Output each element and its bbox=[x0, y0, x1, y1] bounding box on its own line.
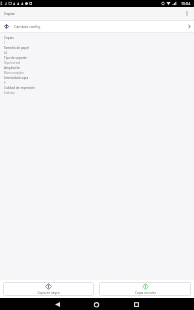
button[interactable]: Intensidad copia bbox=[0, 75, 194, 85]
staticText: 0 bbox=[4, 81, 6, 85]
staticText: 1 bbox=[4, 41, 6, 45]
button[interactable]: Home bbox=[90, 298, 103, 310]
button[interactable]: More options bbox=[180, 7, 194, 21]
staticText: Copia en negro bbox=[37, 291, 60, 295]
staticText: Estándar bbox=[4, 91, 15, 95]
button[interactable]: Calidad de impresión bbox=[0, 85, 194, 95]
staticText: Marco completo bbox=[4, 71, 24, 75]
staticText: Copias bbox=[4, 36, 14, 40]
staticText: Copiar bbox=[4, 11, 15, 16]
staticText: Papel normal bbox=[4, 61, 21, 65]
staticText: Intensidad copia bbox=[4, 76, 29, 80]
button[interactable]: Cambiar config. bbox=[0, 21, 194, 32]
button[interactable]: Copias bbox=[0, 35, 194, 45]
staticText: 15:04 bbox=[181, 1, 191, 6]
staticText: Copia en color bbox=[135, 291, 156, 295]
staticText: Cambiar config. bbox=[14, 24, 41, 29]
staticText: A4 bbox=[4, 51, 8, 55]
button[interactable]: Copia en color bbox=[99, 282, 191, 296]
button[interactable]: Tipo de soporte bbox=[0, 55, 194, 65]
button[interactable]: Copia en negro bbox=[3, 282, 94, 296]
button[interactable]: Recents bbox=[130, 298, 143, 310]
staticText: Tipo de soporte bbox=[4, 56, 27, 60]
button[interactable]: Ampliación bbox=[0, 65, 194, 75]
button[interactable]: Tamaño de papel bbox=[0, 45, 194, 55]
button[interactable]: Back bbox=[51, 298, 64, 310]
staticText: Ampliación bbox=[4, 66, 21, 70]
staticText: Tamaño de papel bbox=[4, 46, 29, 50]
staticText: Calidad de impresión bbox=[4, 86, 35, 90]
